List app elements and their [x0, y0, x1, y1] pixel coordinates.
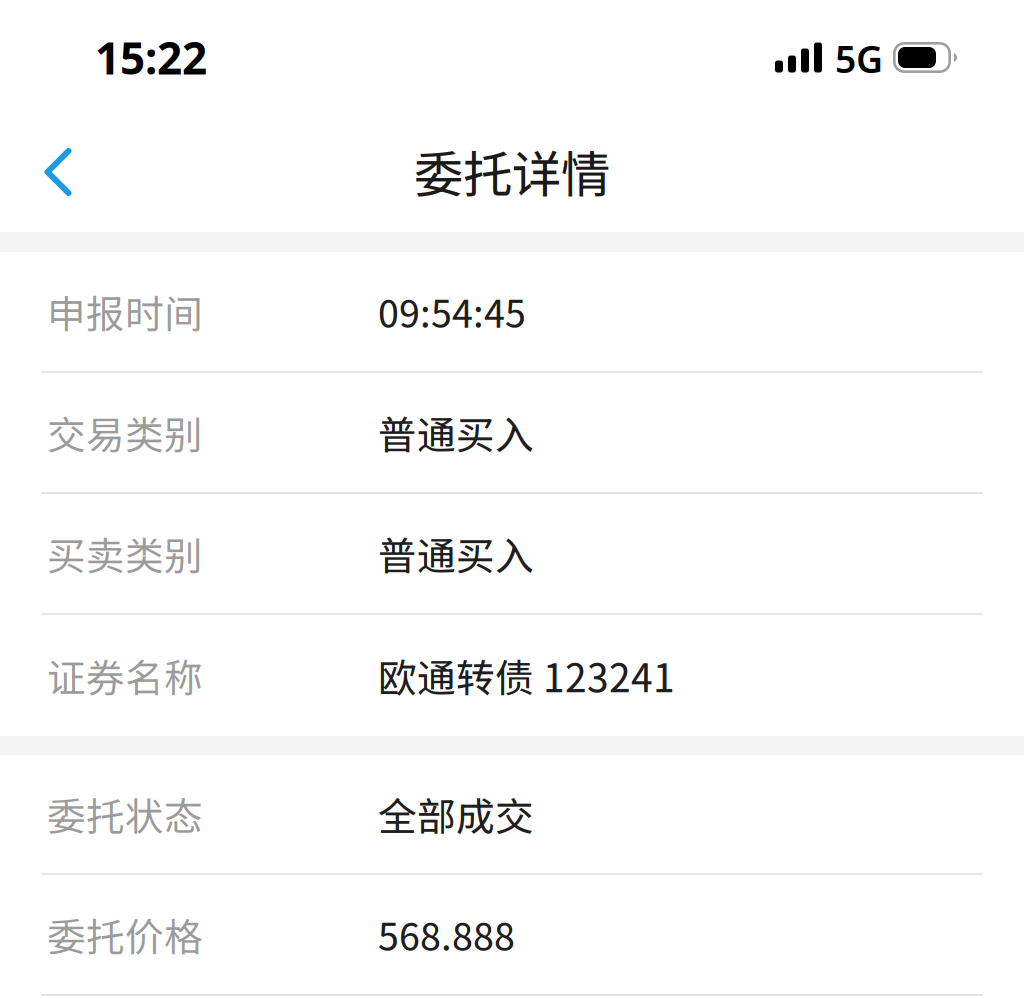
- staticText: 委托详情: [414, 135, 610, 207]
- button[interactable]: 买卖类别: [0, 494, 1024, 615]
- staticText: 5G: [835, 34, 883, 83]
- staticText: 委托状态: [47, 786, 203, 842]
- button[interactable]: 委托价格: [0, 875, 1024, 996]
- button[interactable]: 证券名称: [0, 615, 1024, 736]
- staticText: 欧通转债 123241: [378, 647, 675, 703]
- staticText: 全部成交: [378, 786, 534, 842]
- staticText: 普通买入: [378, 525, 534, 581]
- staticText: 交易类别: [47, 404, 203, 460]
- button[interactable]: Back: [0, 119, 116, 229]
- staticText: 申报时间: [47, 283, 203, 339]
- staticText: 委托价格: [47, 906, 203, 962]
- staticText: 普通买入: [378, 404, 534, 460]
- staticText: 买卖类别: [47, 525, 203, 581]
- button[interactable]: 委托状态: [0, 755, 1024, 875]
- staticText: 09:54:45: [378, 284, 526, 339]
- button[interactable]: 交易类别: [0, 373, 1024, 494]
- staticText: 证券名称: [47, 647, 203, 703]
- staticText: 15:22: [95, 28, 207, 87]
- staticText: 568.888: [378, 907, 515, 962]
- button[interactable]: 申报时间: [0, 252, 1024, 373]
